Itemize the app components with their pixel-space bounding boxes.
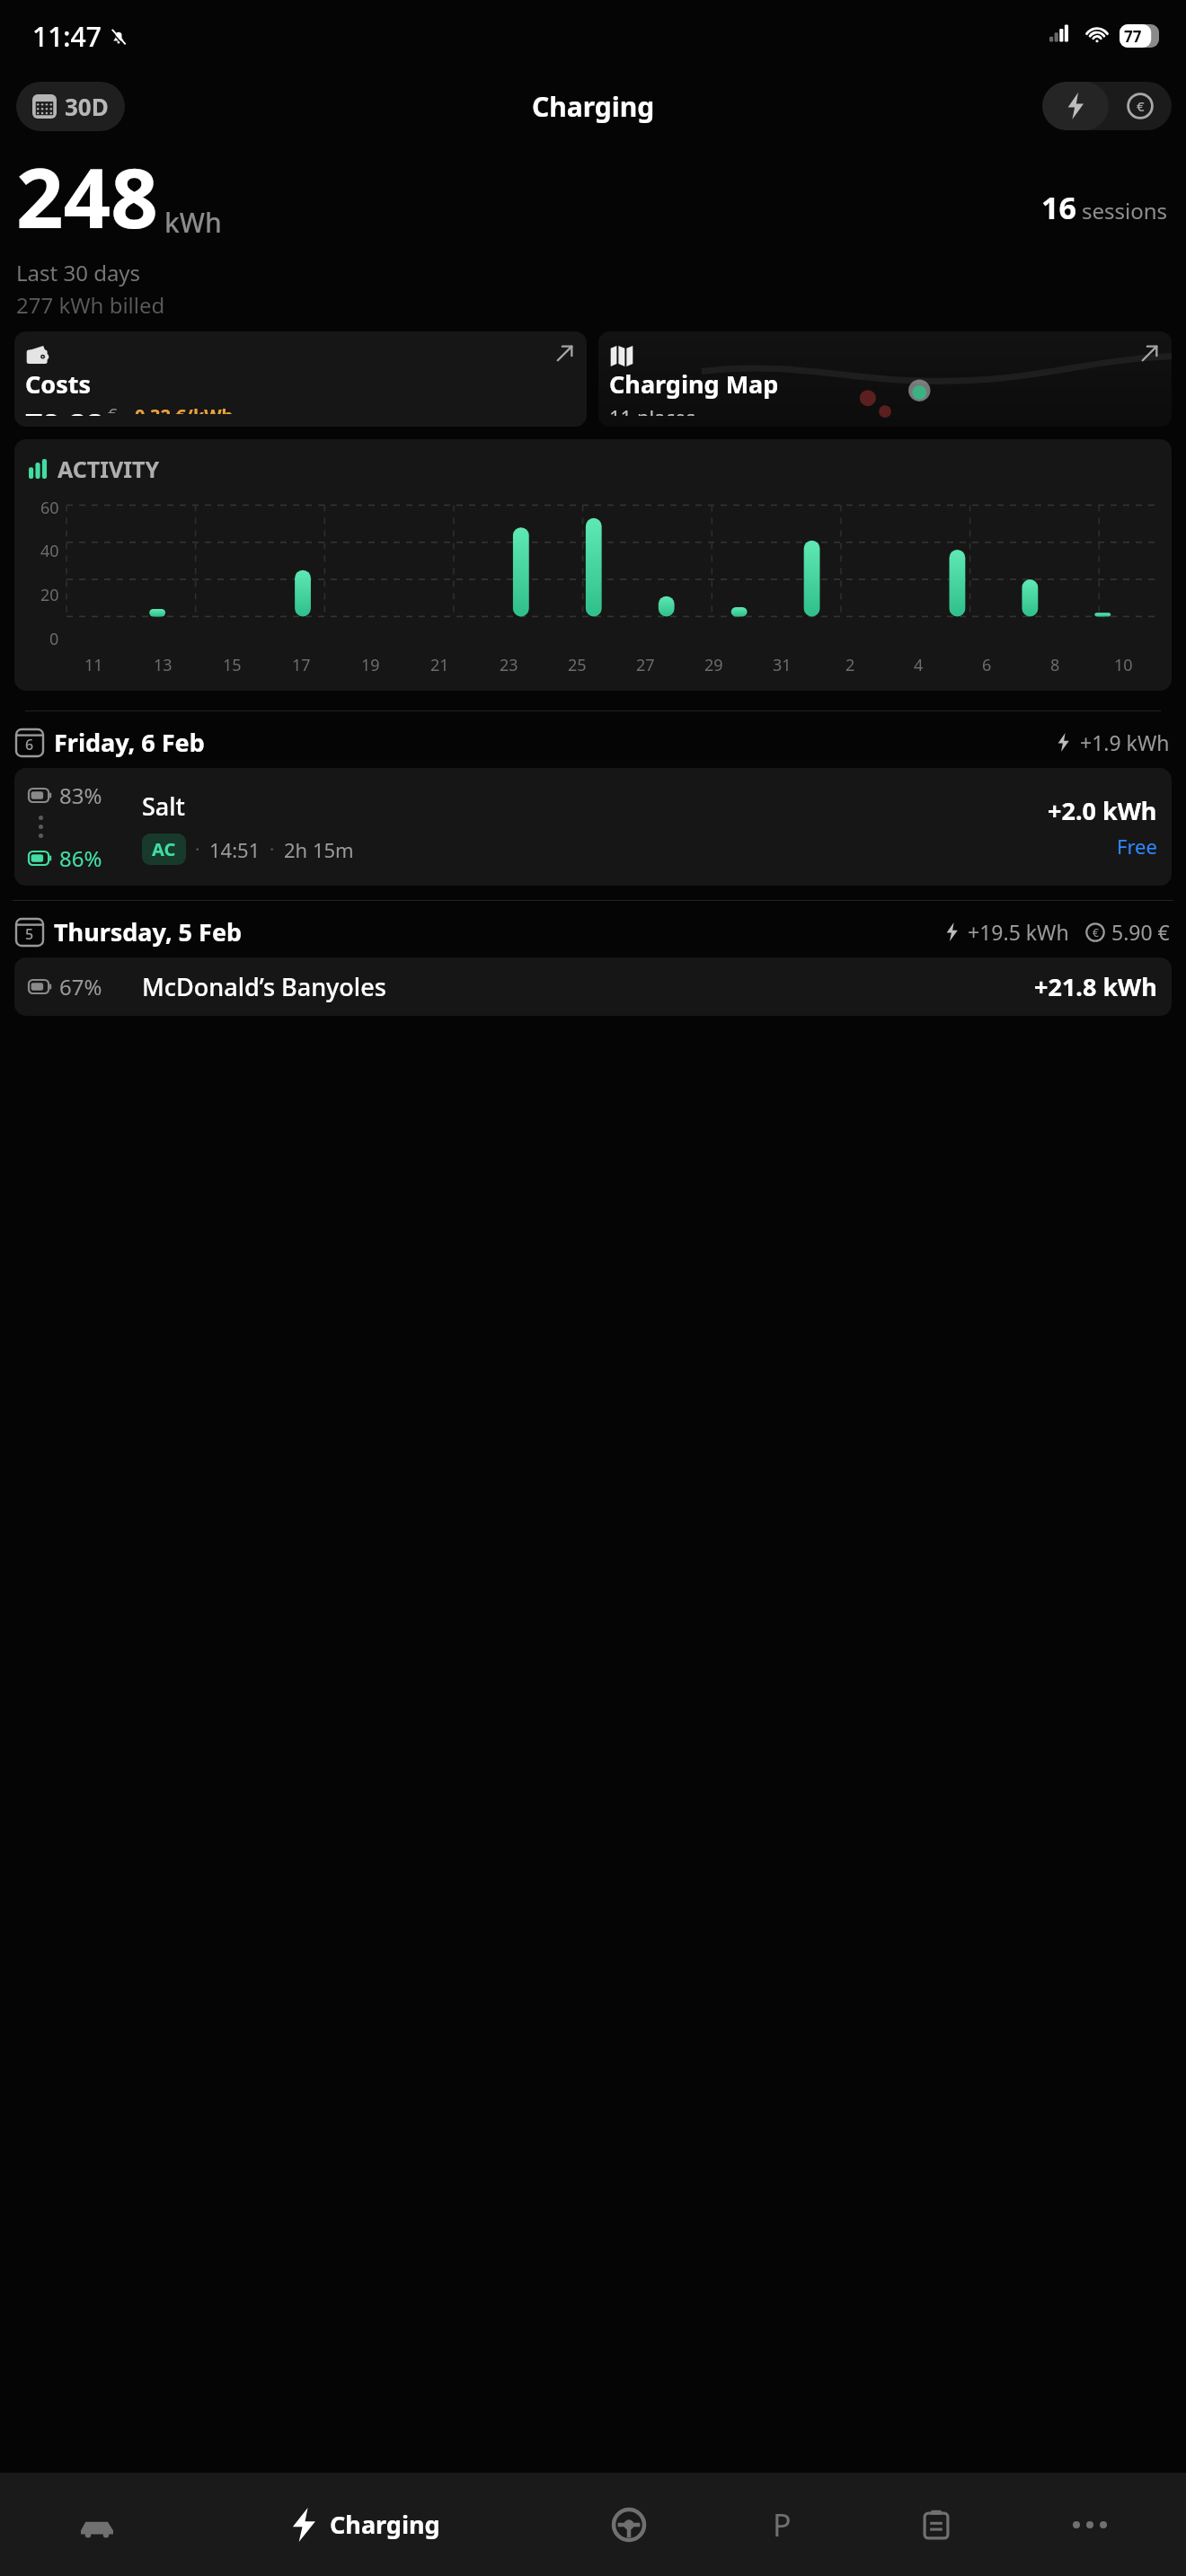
staticText: 40 bbox=[40, 540, 59, 562]
staticText: Charging bbox=[532, 88, 655, 125]
staticText: 83% bbox=[59, 781, 102, 810]
staticText: 17 bbox=[292, 654, 311, 676]
button[interactable]: Parking bbox=[705, 2473, 859, 2576]
staticText: 11 places bbox=[609, 403, 695, 416]
staticText: sessions bbox=[1082, 196, 1168, 225]
staticText: 23 bbox=[500, 654, 518, 676]
staticText: +1.9 kWh bbox=[1080, 728, 1170, 756]
staticText: 11:47 bbox=[32, 18, 102, 55]
button[interactable]: Car bbox=[20, 2473, 174, 2576]
staticText: Friday, 6 Feb bbox=[54, 726, 205, 759]
staticText: 29 bbox=[704, 654, 723, 676]
staticText: 79.22 bbox=[25, 403, 104, 416]
staticText: € bbox=[108, 403, 118, 413]
staticText: Last 30 days bbox=[16, 258, 141, 287]
staticText: ACTIVITY bbox=[58, 454, 160, 484]
staticText: 248 bbox=[16, 140, 158, 252]
staticText: +2.0 kWh bbox=[1048, 794, 1157, 827]
staticText: 6 bbox=[982, 654, 992, 676]
staticText: 5 bbox=[25, 924, 34, 944]
button[interactable]: 30D bbox=[16, 82, 125, 131]
staticText: 67% bbox=[59, 972, 102, 1001]
staticText: 5.90 € bbox=[1111, 918, 1170, 946]
staticText: AC bbox=[152, 837, 176, 861]
button[interactable]: 6 bbox=[16, 726, 1170, 759]
button[interactable]: Charging bbox=[174, 2473, 552, 2576]
staticText: 4 bbox=[914, 654, 924, 676]
staticText: 77 bbox=[1124, 26, 1142, 47]
staticText: +21.8 kWh bbox=[1034, 970, 1157, 1003]
button[interactable]: 67% bbox=[14, 957, 1172, 1016]
staticText: 19 bbox=[361, 654, 380, 676]
staticText: Free bbox=[1117, 833, 1157, 860]
staticText: +19.5 kWh bbox=[968, 918, 1069, 946]
staticText: 25 bbox=[568, 654, 587, 676]
staticText: · bbox=[270, 837, 275, 861]
staticText: 2 bbox=[845, 654, 855, 676]
staticText: 27 bbox=[636, 654, 655, 676]
staticText: Charging Map bbox=[609, 367, 779, 401]
staticText: P bbox=[773, 2504, 792, 2545]
staticText: 6 bbox=[25, 735, 34, 754]
staticText: McDonald’s Banyoles bbox=[142, 970, 386, 1003]
staticText: 15 bbox=[223, 654, 242, 676]
staticText: 21 bbox=[430, 654, 449, 676]
staticText: Costs bbox=[25, 367, 92, 401]
button[interactable]: Drive bbox=[552, 2473, 705, 2576]
staticText: · bbox=[195, 837, 200, 861]
staticText: 31 bbox=[773, 654, 792, 676]
staticText: Thursday, 5 Feb bbox=[54, 915, 243, 948]
button[interactable]: 83% bbox=[14, 768, 1172, 886]
button[interactable]: 5 bbox=[16, 915, 1170, 948]
staticText: 10 bbox=[1114, 654, 1133, 676]
staticText: 277 kWh billed bbox=[16, 290, 165, 320]
staticText: 16 bbox=[1041, 187, 1076, 228]
staticText: 60 bbox=[40, 497, 59, 519]
button[interactable]: Checklist bbox=[859, 2473, 1013, 2576]
button[interactable]: Energy bbox=[1042, 82, 1109, 130]
button[interactable]: ACTIVITY bbox=[14, 439, 1172, 691]
button[interactable]: More bbox=[1013, 2473, 1166, 2576]
staticText: 8 bbox=[1050, 654, 1060, 676]
staticText: Charging bbox=[330, 2508, 440, 2541]
staticText: 0 bbox=[49, 628, 59, 650]
staticText: 11 bbox=[84, 654, 103, 676]
staticText: 86% bbox=[59, 843, 102, 873]
staticText: 2h 15m bbox=[284, 836, 354, 863]
staticText: 0.32 €/kWh bbox=[135, 403, 234, 414]
staticText: 13 bbox=[154, 654, 173, 676]
staticText: 14:51 bbox=[209, 836, 261, 863]
button[interactable]: Charging Map bbox=[598, 331, 1172, 427]
button[interactable]: Costs bbox=[14, 331, 587, 427]
staticText: € bbox=[1137, 97, 1145, 115]
button[interactable]: Cost bbox=[1109, 82, 1172, 130]
staticText: 30D bbox=[65, 91, 109, 122]
staticText: Salt bbox=[142, 790, 185, 823]
staticText: kWh bbox=[164, 204, 222, 241]
staticText: € bbox=[1093, 925, 1099, 940]
staticText: 20 bbox=[40, 584, 59, 606]
